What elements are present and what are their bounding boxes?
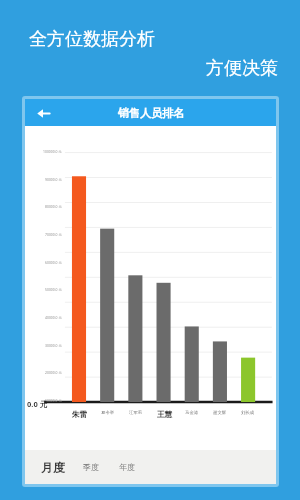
button[interactable]: 季度 bbox=[71, 455, 107, 479]
staticText: 王慧 bbox=[157, 410, 172, 419]
staticText: 30000.0 元 bbox=[45, 343, 62, 348]
staticText: 60000.0 元 bbox=[45, 260, 62, 265]
staticText: 80000.0 元 bbox=[45, 204, 62, 209]
staticText: 谢文辉 bbox=[213, 410, 227, 416]
button[interactable]: Back bbox=[32, 102, 54, 124]
staticText: 50000.0 元 bbox=[45, 287, 62, 292]
staticText: 马金涛 bbox=[185, 410, 199, 416]
staticText: 季度 bbox=[83, 462, 99, 472]
button[interactable]: 年度 bbox=[107, 455, 143, 479]
staticText: 70000.0 元 bbox=[45, 232, 62, 237]
staticText: 夏令举 bbox=[101, 410, 115, 416]
staticText: 销售人员排名 bbox=[118, 106, 184, 120]
staticText: 朱雷 bbox=[72, 410, 87, 419]
staticText: 江军莉 bbox=[129, 410, 143, 416]
staticText: 方便决策 bbox=[206, 57, 278, 80]
staticText: 40000.0 元 bbox=[45, 315, 62, 320]
staticText: 刘长成 bbox=[241, 410, 255, 416]
staticText: 年度 bbox=[119, 462, 135, 472]
staticText: 20000.0 元 bbox=[45, 370, 62, 375]
staticText: 10000.0 元 bbox=[45, 398, 62, 403]
staticText: 月度 bbox=[41, 460, 65, 475]
staticText: 全方位数据分析 bbox=[29, 28, 155, 51]
staticText: 100000.0 元 bbox=[43, 149, 62, 154]
staticText: 90000.0 元 bbox=[45, 177, 62, 182]
button[interactable]: 月度 bbox=[25, 453, 71, 482]
staticText: 0.0 元 bbox=[27, 399, 48, 409]
